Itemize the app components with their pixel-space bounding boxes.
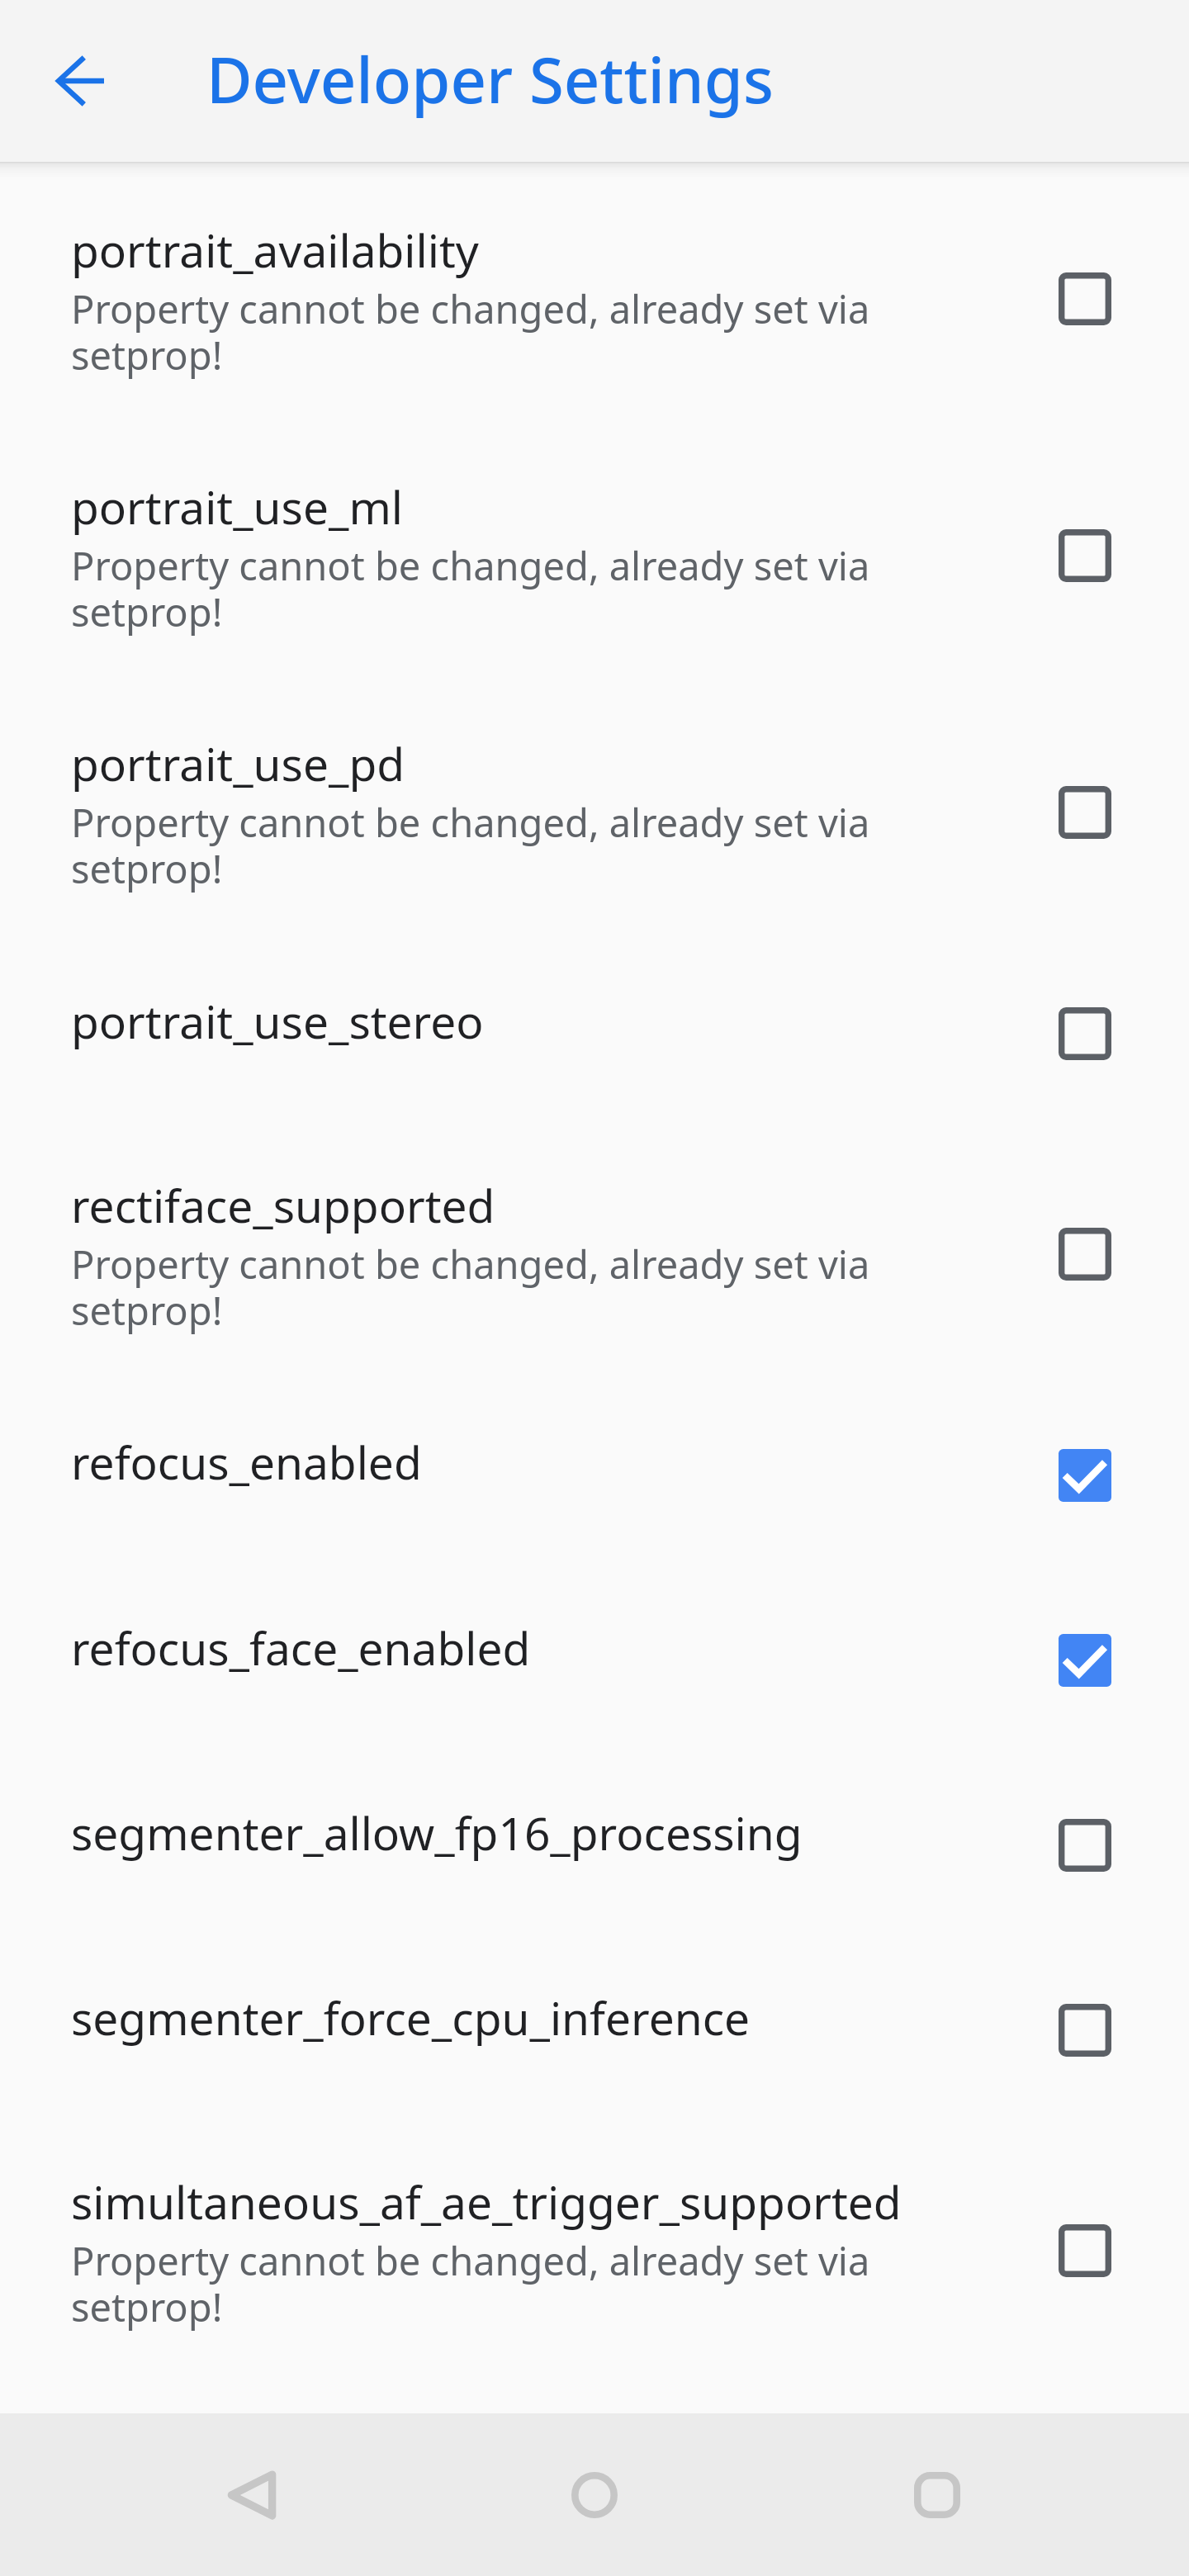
staticText: segmenter_allow_fp16_processing (71, 1802, 803, 1863)
staticText: Property cannot be changed, already set … (71, 2239, 876, 2332)
button[interactable]: refocus_enabled (0, 1382, 1189, 1568)
staticText: refocus_face_enabled (71, 1617, 531, 1679)
staticText: Property cannot be changed, already set … (71, 1243, 876, 1335)
staticText: rectiface_supported (71, 1174, 495, 1236)
button[interactable]: segmenter_force_cpu_inference (0, 1938, 1189, 2122)
staticText: Property cannot be changed, already set … (71, 287, 876, 380)
button[interactable]: segmenter_allow_fp16_processing (0, 1753, 1189, 1938)
staticText: refocus_enabled (71, 1431, 422, 1493)
staticText: Property cannot be changed, already set … (71, 801, 876, 893)
staticText: portrait_use_stereo (71, 990, 484, 1052)
button[interactable]: Back (81, 2413, 423, 2576)
button[interactable]: portrait_use_stereo (0, 941, 1189, 1125)
staticText: portrait_availability (71, 219, 479, 281)
button[interactable]: Navigate up (0, 0, 162, 162)
button[interactable]: simultaneous_af_ae_trigger_supported (0, 2122, 1189, 2379)
button[interactable]: Home (423, 2413, 765, 2576)
staticText: simultaneous_af_ae_trigger_supported (71, 2171, 902, 2233)
staticText: portrait_use_ml (71, 476, 403, 537)
staticText: portrait_use_pd (71, 732, 405, 794)
staticText: segmenter_force_cpu_inference (71, 1986, 751, 2048)
staticText: Property cannot be changed, already set … (71, 544, 876, 637)
button[interactable]: Recent apps (765, 2413, 1108, 2576)
staticText: Developer Settings (206, 36, 774, 122)
button[interactable]: portrait_use_ml (0, 427, 1189, 684)
button[interactable]: refocus_face_enabled (0, 1568, 1189, 1753)
button[interactable]: rectiface_supported (0, 1125, 1189, 1382)
button[interactable]: portrait_availability (0, 170, 1189, 427)
button[interactable]: portrait_use_pd (0, 684, 1189, 941)
